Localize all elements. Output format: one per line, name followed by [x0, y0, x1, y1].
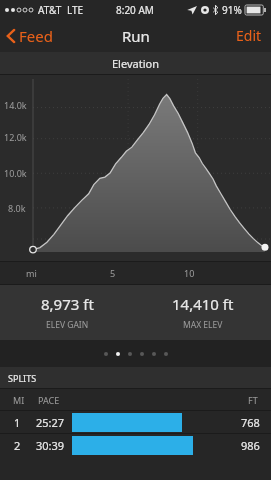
- button[interactable]: 1: [0, 411, 271, 433]
- staticText: Feed: [19, 26, 53, 46]
- button[interactable]: 2: [0, 434, 271, 456]
- staticText: 2: [14, 438, 21, 453]
- staticText: 14.0k: [4, 99, 27, 111]
- staticText: 986: [241, 438, 260, 453]
- staticText: FT: [248, 394, 258, 406]
- staticText: Elevation: [112, 56, 159, 71]
- staticText: 8.0k: [8, 202, 26, 214]
- staticText: MI: [13, 394, 25, 406]
- staticText: ELEV GAIN: [46, 319, 89, 331]
- staticText: PACE: [38, 394, 60, 406]
- staticText: 1: [14, 415, 21, 430]
- staticText: 8:20 AM: [116, 3, 154, 17]
- staticText: Run: [122, 26, 150, 46]
- staticText: mi: [26, 267, 37, 279]
- button[interactable]: Feed: [0, 21, 63, 51]
- staticText: MAX ELEV: [183, 319, 223, 331]
- staticText: 768: [241, 415, 260, 430]
- staticText: LTE: [67, 3, 84, 17]
- staticText: 25:27: [36, 415, 65, 430]
- button[interactable]: 8,973 ft: [0, 285, 271, 340]
- button[interactable]: Edit: [227, 20, 271, 51]
- staticText: 91%: [222, 3, 242, 17]
- staticText: 10.0k: [4, 167, 27, 179]
- staticText: AT&T: [38, 3, 62, 17]
- staticText: 8,973 ft: [41, 294, 94, 314]
- staticText: 10: [184, 267, 195, 279]
- staticText: Edit: [236, 26, 262, 45]
- staticText: 14,410 ft: [172, 294, 234, 314]
- staticText: 30:39: [36, 438, 65, 453]
- staticText: 12.0k: [4, 131, 27, 143]
- staticText: SPLITS: [8, 372, 37, 384]
- staticText: 5: [110, 267, 116, 279]
